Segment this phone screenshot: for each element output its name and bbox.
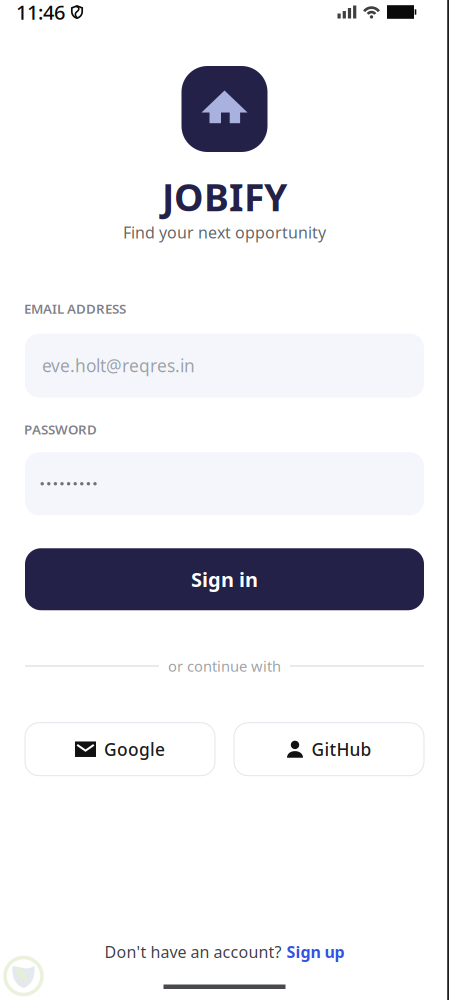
button[interactable]: Password bbox=[25, 452, 424, 515]
button[interactable]: Google bbox=[25, 723, 215, 776]
staticText: JOBIFY bbox=[162, 172, 287, 222]
staticText: Google bbox=[104, 738, 165, 761]
staticText: eve.holt@reqres.in bbox=[42, 354, 195, 377]
button[interactable]: GitHub bbox=[234, 723, 424, 776]
button[interactable]: eve.holt@reqres.in bbox=[25, 333, 424, 397]
button[interactable]: Sign in bbox=[25, 548, 424, 610]
button[interactable]: Sign up bbox=[286, 941, 344, 962]
staticText: Sign up bbox=[286, 941, 344, 962]
staticText: Find your next opportunity bbox=[123, 222, 326, 243]
staticText: EMAIL ADDRESS bbox=[24, 300, 126, 317]
staticText: 11:46 bbox=[16, 0, 65, 25]
staticText: GitHub bbox=[311, 738, 371, 761]
staticText: Sign in bbox=[191, 566, 258, 593]
staticText: PASSWORD bbox=[24, 420, 97, 438]
staticText: or continue with bbox=[168, 656, 281, 676]
staticText: Don't have an account? bbox=[104, 941, 281, 962]
